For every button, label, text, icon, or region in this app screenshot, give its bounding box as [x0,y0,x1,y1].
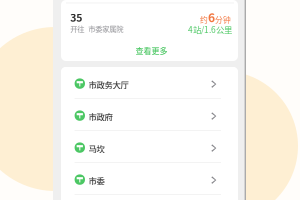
staticText: 马坎 [89,142,105,155]
staticText: 市委 [89,174,105,187]
staticText: 市政务大厅 [89,78,129,91]
staticText: 查看更多 [135,45,167,56]
staticText: 35 [70,10,82,25]
button[interactable]: 市委 [61,163,238,194]
button[interactable]: 马坎 [61,131,238,162]
staticText: 约6分钟 [200,8,231,25]
staticText: 4站/1.6公里 [188,23,232,35]
button[interactable]: 查看更多 [63,44,240,56]
staticText: 开往 市委家属院 [70,23,123,34]
button[interactable]: 市政府 [61,99,238,130]
staticText: 市政府 [89,110,113,123]
button[interactable]: 市政务大厅 [61,67,238,98]
